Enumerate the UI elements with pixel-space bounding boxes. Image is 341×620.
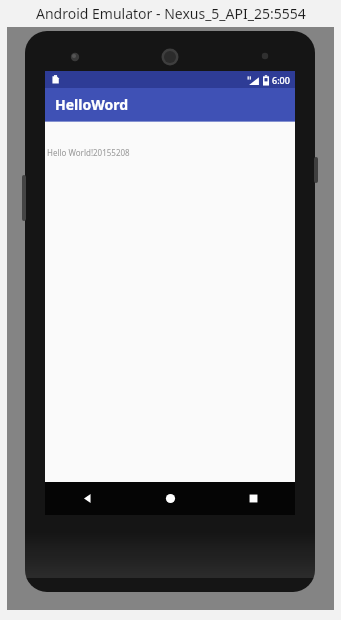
button[interactable]: Hello World!20155208 [47,147,130,158]
button[interactable]: HelloWord [45,88,295,121]
other: Volume [22,175,26,221]
staticText: 6:00 [272,74,290,86]
staticText: Android Emulator - Nexus_5_API_25:5554 [36,4,306,23]
staticText: HelloWord [55,95,128,114]
button[interactable]: Back [45,482,129,515]
button[interactable]: Home [129,482,212,515]
button[interactable]: Recent apps [212,482,295,515]
other: Power [314,157,318,183]
